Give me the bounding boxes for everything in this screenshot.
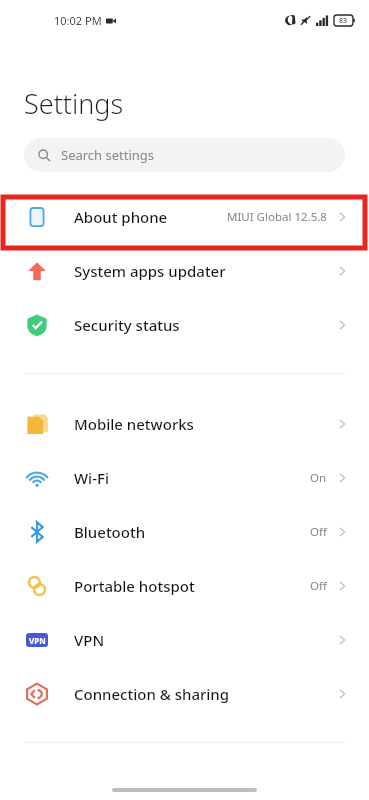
staticText: Settings xyxy=(24,85,124,122)
staticText: Off xyxy=(310,524,327,540)
staticText: On xyxy=(310,470,327,486)
button[interactable]: Mobile networks xyxy=(0,397,369,451)
staticText: Security status xyxy=(74,315,180,335)
button[interactable]: Security status xyxy=(0,298,369,352)
button[interactable]: VPN xyxy=(0,613,369,667)
staticText: 10:02 PM xyxy=(54,13,102,28)
staticText: About phone xyxy=(74,207,168,227)
button[interactable]: Portable hotspot xyxy=(0,559,369,613)
staticText: Search settings xyxy=(61,146,155,164)
button[interactable]: System apps updater xyxy=(0,244,369,298)
staticText: Connection & sharing xyxy=(74,684,230,704)
staticText: VPN xyxy=(74,630,105,650)
staticText: Portable hotspot xyxy=(74,576,195,596)
staticText: 83 xyxy=(339,16,348,26)
staticText: MIUI Global 12.5.8 xyxy=(227,209,327,225)
staticText: Wi-Fi xyxy=(74,468,109,488)
staticText: System apps updater xyxy=(74,261,226,281)
staticText: VPN xyxy=(29,635,46,646)
button[interactable]: About phone xyxy=(0,190,369,244)
button[interactable]: Bluetooth xyxy=(0,505,369,559)
staticText: Mobile networks xyxy=(74,414,194,434)
staticText: Bluetooth xyxy=(74,522,146,542)
button[interactable]: Search settings xyxy=(24,138,345,172)
staticText: Off xyxy=(310,578,327,594)
button[interactable]: Wi-Fi xyxy=(0,451,369,505)
button[interactable]: Connection & sharing xyxy=(0,667,369,721)
